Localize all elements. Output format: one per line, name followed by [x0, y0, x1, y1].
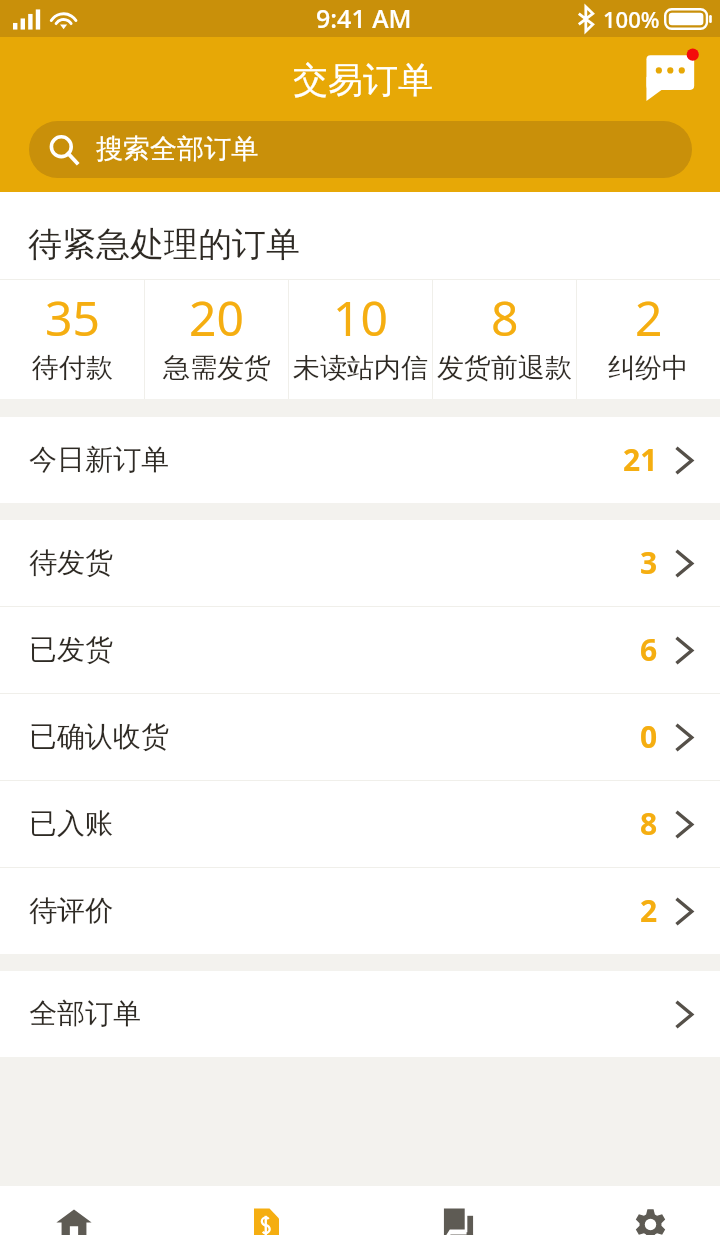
button[interactable]: Messages	[410, 1186, 506, 1235]
staticText: 全部订单	[29, 996, 141, 1031]
staticText: 3	[640, 542, 658, 583]
staticText: 纠纷中	[608, 351, 689, 385]
staticText: 待付款	[32, 351, 113, 385]
staticText: 搜索全部订单	[96, 132, 258, 166]
button[interactable]: 待发货	[0, 520, 720, 606]
staticText: 8	[491, 285, 519, 350]
staticText: 9:41 AM	[316, 1, 412, 35]
button[interactable]: 待评价	[0, 868, 720, 954]
staticText: 已确认收货	[29, 719, 169, 754]
staticText: 今日新订单	[29, 442, 169, 477]
button[interactable]: 全部订单	[0, 971, 720, 1057]
button[interactable]: 已入账	[0, 781, 720, 867]
staticText: 35	[45, 285, 100, 350]
staticText: 2	[635, 285, 663, 350]
button[interactable]: 已确认收货	[0, 694, 720, 780]
button[interactable]: 10	[289, 280, 432, 399]
staticText: 待紧急处理的订单	[28, 223, 300, 266]
staticText: 交易订单	[293, 58, 433, 102]
staticText: 2	[640, 890, 658, 931]
staticText: 已发货	[29, 632, 113, 667]
staticText: 21	[623, 439, 658, 480]
button[interactable]: 今日新订单	[0, 417, 720, 503]
button[interactable]: Orders	[218, 1186, 314, 1235]
button[interactable]: Home	[26, 1186, 122, 1235]
staticText: 0	[640, 716, 658, 757]
staticText: 20	[189, 285, 244, 350]
staticText: 已入账	[29, 806, 113, 841]
button[interactable]: 35	[0, 280, 144, 399]
button[interactable]: Messages	[639, 49, 701, 105]
button[interactable]: 8	[433, 280, 576, 399]
staticText: 100%	[603, 4, 660, 34]
staticText: 10	[333, 285, 388, 350]
staticText: 未读站内信	[293, 351, 428, 385]
button[interactable]: 已发货	[0, 607, 720, 693]
button[interactable]: 2	[577, 280, 720, 399]
button[interactable]: 20	[145, 280, 288, 399]
staticText: 急需发货	[163, 351, 271, 385]
staticText: 待发货	[29, 545, 113, 580]
staticText: 待评价	[29, 893, 113, 928]
staticText: 6	[640, 629, 658, 670]
staticText: 发货前退款	[437, 351, 572, 385]
staticText: 8	[640, 803, 658, 844]
button[interactable]: 搜索全部订单	[29, 121, 692, 178]
button[interactable]: Settings	[602, 1186, 698, 1235]
